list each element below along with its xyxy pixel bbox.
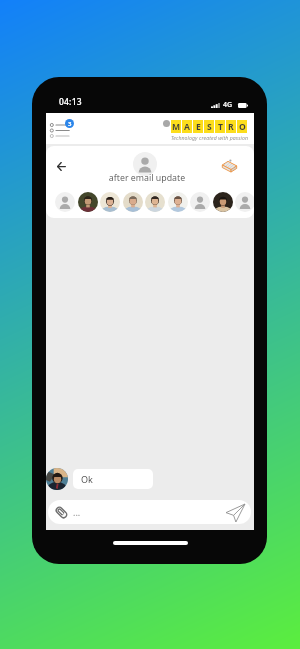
button[interactable]: Back: [50, 155, 73, 178]
button[interactable]: Attach: [52, 503, 70, 521]
staticText: R: [228, 121, 234, 133]
staticText: S: [207, 121, 212, 133]
staticText: T: [218, 121, 223, 133]
staticText: O: [239, 121, 246, 133]
button[interactable]: [48, 500, 251, 524]
staticText: 3: [68, 120, 72, 128]
staticText: after email update: [97, 172, 197, 184]
button[interactable]: Send: [224, 502, 246, 524]
staticText: A: [184, 121, 190, 133]
staticText: ...: [73, 506, 81, 518]
button[interactable]: Announcements: [220, 157, 239, 176]
staticText: 04:13: [59, 96, 82, 108]
staticText: Ok: [81, 473, 93, 485]
button[interactable]: Ok: [73, 469, 153, 489]
staticText: Technology created with passion: [171, 134, 248, 141]
button[interactable]: Menu: [48, 115, 76, 142]
staticText: M: [172, 121, 181, 133]
staticText: E: [196, 121, 201, 133]
staticText: 4G: [223, 100, 233, 110]
